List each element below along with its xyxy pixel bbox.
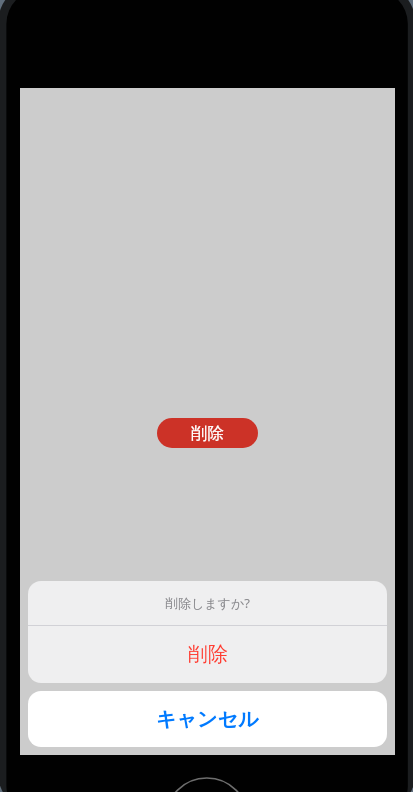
staticText: キャンセル — [156, 707, 259, 732]
staticText: 削除 — [191, 423, 224, 444]
button[interactable]: キャンセル — [28, 691, 387, 747]
button[interactable]: 削除 — [157, 418, 258, 448]
staticText: 削除しますか? — [165, 594, 250, 612]
staticText: 削除 — [188, 642, 228, 667]
other: Home — [0, 0, 413, 792]
button[interactable]: 削除 — [28, 626, 387, 683]
